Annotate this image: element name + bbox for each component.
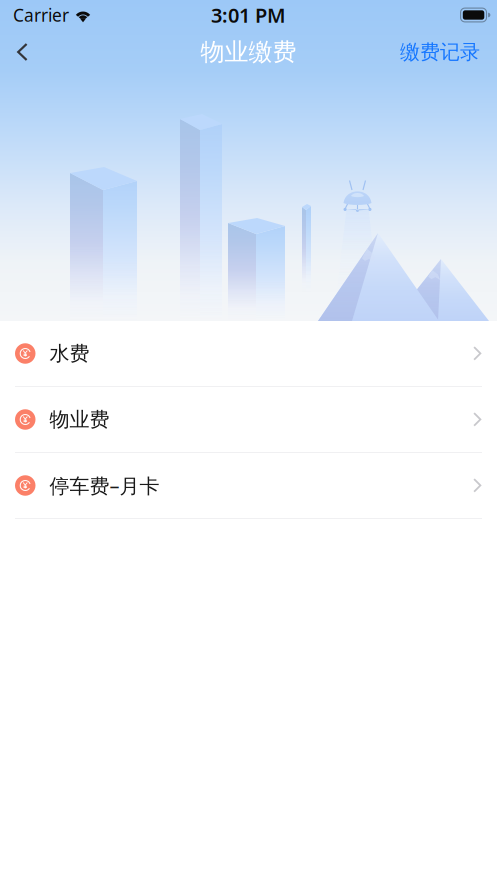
staticText: 停车费–月卡 bbox=[49, 472, 159, 499]
staticText: 3:01 PM bbox=[211, 2, 286, 28]
button[interactable]: 缴费记录 bbox=[385, 30, 497, 74]
staticText: 缴费记录 bbox=[400, 40, 480, 64]
button[interactable]: 水费 bbox=[0, 321, 497, 387]
staticText: 物业费 bbox=[49, 407, 109, 432]
button[interactable]: Back bbox=[0, 30, 47, 74]
staticText: Carrier bbox=[13, 3, 69, 26]
staticText: 水费 bbox=[49, 341, 89, 366]
staticText: 物业缴费 bbox=[200, 37, 296, 67]
button[interactable]: 停车费–月卡 bbox=[0, 453, 497, 519]
button[interactable]: 物业费 bbox=[0, 387, 497, 453]
